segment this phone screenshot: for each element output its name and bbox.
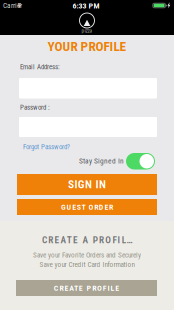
button[interactable]: Stay Signed In bbox=[126, 153, 155, 169]
staticText: pizza bbox=[81, 28, 92, 34]
staticText: Email Address: bbox=[20, 63, 60, 71]
staticText: YOUR PROFILE bbox=[47, 39, 126, 54]
button[interactable]: SIGN IN bbox=[17, 174, 157, 195]
staticText: CREATE A PROFILE bbox=[42, 234, 132, 245]
staticText: Carrier bbox=[3, 1, 22, 10]
button[interactable]: CREATE PROFILE bbox=[16, 280, 157, 296]
staticText: GUEST ORDER bbox=[61, 202, 113, 212]
button[interactable]: Forgot Password? bbox=[23, 142, 83, 151]
staticText: Password : bbox=[20, 103, 50, 111]
staticText: Stay Signed In bbox=[79, 157, 124, 165]
staticText: Save your Favorite Orders and Securely bbox=[33, 251, 141, 259]
staticText: Save your Credit Card Information bbox=[39, 260, 134, 269]
staticText: Forgot Password? bbox=[23, 143, 70, 151]
staticText: SIGN IN bbox=[68, 178, 106, 191]
staticText: 6:33 PM bbox=[72, 1, 99, 10]
button[interactable]: GUEST ORDER bbox=[17, 199, 157, 215]
staticText: CREATE PROFILE bbox=[54, 283, 119, 293]
